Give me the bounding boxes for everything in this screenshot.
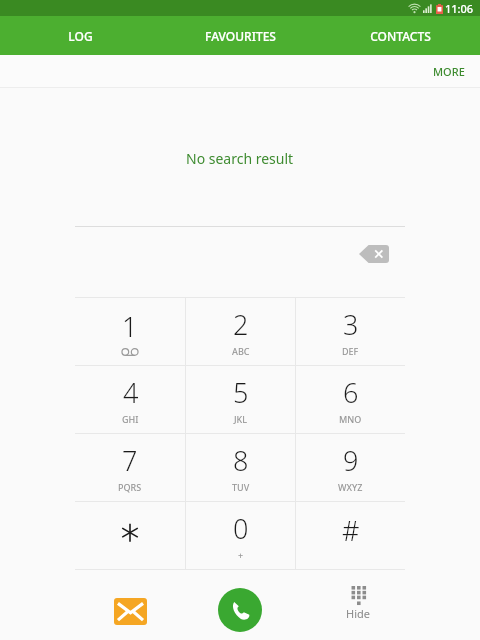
button[interactable]: 5 bbox=[186, 366, 295, 433]
button[interactable]: LOG bbox=[0, 16, 160, 55]
button[interactable]: 0 bbox=[186, 502, 295, 569]
button[interactable]: 3 bbox=[296, 298, 405, 365]
staticText: 11:06 bbox=[445, 1, 474, 16]
staticText: Hide bbox=[346, 606, 370, 621]
staticText: 8 bbox=[233, 442, 249, 479]
button[interactable]: Hide keypad bbox=[332, 585, 384, 635]
button[interactable]: 8 bbox=[186, 434, 295, 501]
staticText: CONTACTS bbox=[370, 28, 431, 44]
button[interactable]: # bbox=[296, 502, 405, 569]
button[interactable]: 6 bbox=[296, 366, 405, 433]
button[interactable]: Backspace bbox=[352, 239, 396, 269]
staticText: 3 bbox=[343, 306, 359, 343]
staticText: # bbox=[342, 512, 360, 549]
button[interactable]: FAVOURITES bbox=[160, 16, 320, 55]
staticText: No search result bbox=[186, 149, 294, 168]
staticText: 0 bbox=[233, 510, 249, 547]
staticText: 4 bbox=[123, 374, 139, 411]
staticText: DEF bbox=[342, 345, 359, 357]
staticText: JKL bbox=[234, 413, 248, 425]
staticText: PQRS bbox=[118, 481, 142, 493]
button[interactable]: 9 bbox=[296, 434, 405, 501]
button[interactable]: Send message bbox=[104, 589, 156, 633]
button[interactable]: CONTACTS bbox=[320, 16, 480, 55]
staticText: ABC bbox=[232, 345, 250, 357]
staticText: LOG bbox=[68, 28, 93, 44]
staticText: FAVOURITES bbox=[205, 28, 276, 44]
staticText: TUV bbox=[232, 481, 250, 493]
staticText: GHI bbox=[122, 413, 139, 425]
staticText: 1 bbox=[122, 308, 138, 345]
staticText: 7 bbox=[122, 442, 138, 479]
staticText: 2 bbox=[233, 306, 249, 343]
staticText: 6 bbox=[343, 374, 359, 411]
button[interactable]: 7 bbox=[75, 434, 185, 501]
staticText: + bbox=[238, 549, 244, 561]
button[interactable] bbox=[75, 502, 185, 569]
button[interactable]: Call bbox=[218, 588, 262, 632]
button[interactable]: 2 bbox=[186, 298, 295, 365]
button[interactable]: MORE bbox=[418, 55, 480, 88]
staticText: MNO bbox=[339, 413, 362, 425]
staticText: 5 bbox=[233, 374, 249, 411]
button[interactable]: 1 bbox=[75, 298, 185, 365]
staticText: 9 bbox=[343, 442, 359, 479]
staticText: MORE bbox=[433, 64, 465, 79]
staticText: WXYZ bbox=[338, 481, 363, 493]
button[interactable]: 4 bbox=[75, 366, 185, 433]
